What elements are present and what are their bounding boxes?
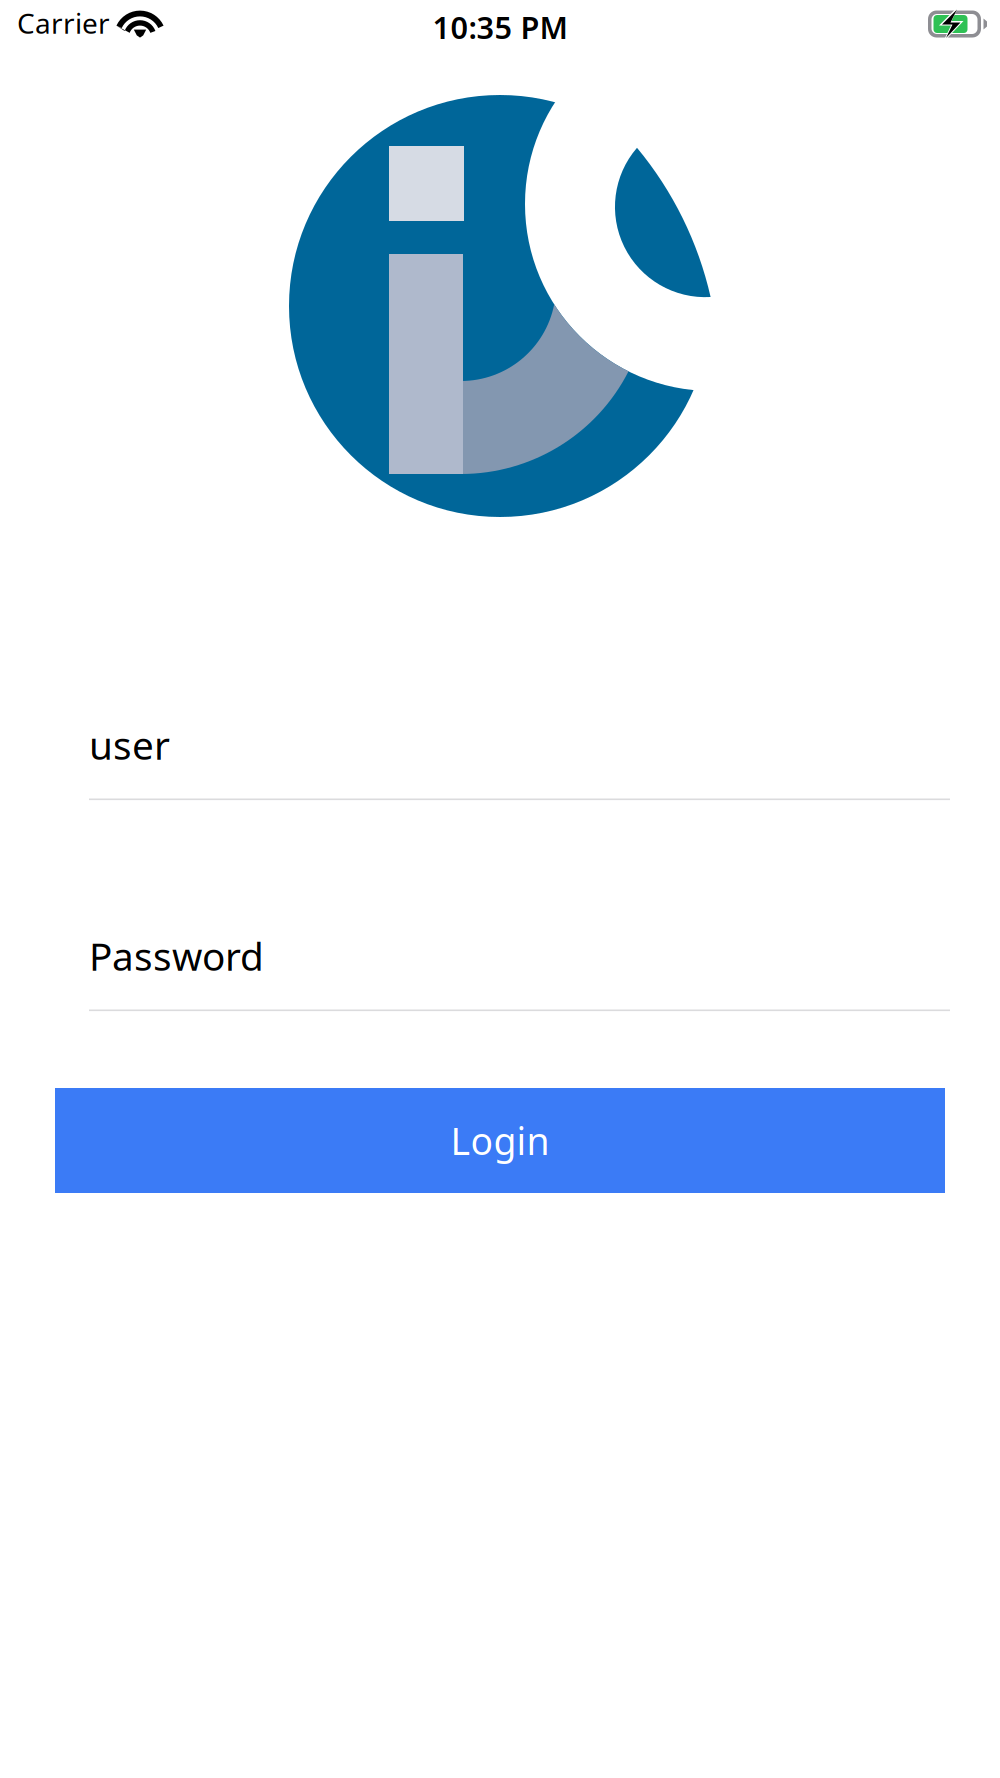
- staticText: Carrier: [17, 4, 110, 42]
- button[interactable]: Login: [55, 1088, 945, 1193]
- staticText: Password: [89, 930, 264, 981]
- button[interactable]: Password: [0, 930, 1000, 1019]
- staticText: Login: [450, 1116, 549, 1165]
- staticText: 10:35 PM: [432, 7, 567, 47]
- staticText: user: [89, 719, 170, 770]
- button[interactable]: user: [0, 719, 1000, 808]
